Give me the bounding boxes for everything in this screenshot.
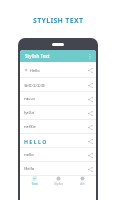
button[interactable]: Share — [86, 137, 94, 145]
button[interactable]: ℍello — [20, 162, 96, 176]
staticText: Text — [31, 182, 38, 186]
staticText: Hello — [30, 68, 40, 73]
staticText: ℍello — [24, 166, 35, 172]
button[interactable]: HELLO — [20, 134, 96, 148]
staticText: HELLO — [24, 138, 48, 145]
staticText: ʜello — [24, 152, 34, 158]
staticText: Art — [80, 182, 85, 186]
button[interactable]: Share — [86, 151, 94, 159]
button[interactable]: Share — [86, 81, 94, 89]
button[interactable]: Styles — [48, 176, 68, 186]
staticText: ʜᴇʟʟᴏ — [24, 96, 35, 102]
button[interactable]: Share — [86, 95, 94, 103]
button[interactable]: Share — [86, 109, 94, 117]
button[interactable]: More options — [86, 52, 94, 60]
button[interactable]: Hello — [20, 62, 96, 78]
staticText: STYLISH TEXT — [33, 16, 84, 26]
staticText: Styles — [54, 182, 63, 186]
button[interactable]: Text — [24, 176, 44, 186]
button[interactable]: ⒽⒺⓁⓁⓄ — [20, 78, 96, 92]
button[interactable]: Art — [72, 176, 92, 186]
staticText: ɧɛƖƖơ — [24, 110, 35, 116]
button[interactable]: нєℓℓσ — [20, 120, 96, 134]
staticText: нєℓℓσ — [24, 124, 36, 130]
button[interactable]: Share — [86, 66, 94, 74]
staticText: ⒽⒺⓁⓁⓄ — [24, 83, 45, 88]
button[interactable]: ʜᴇʟʟᴏ — [20, 92, 96, 106]
staticText: Stylish Text — [25, 53, 50, 59]
button[interactable]: ɧɛƖƖơ — [20, 106, 96, 120]
button[interactable]: ʜello — [20, 148, 96, 162]
button[interactable]: Share — [86, 123, 94, 131]
button[interactable]: Share — [86, 165, 94, 173]
